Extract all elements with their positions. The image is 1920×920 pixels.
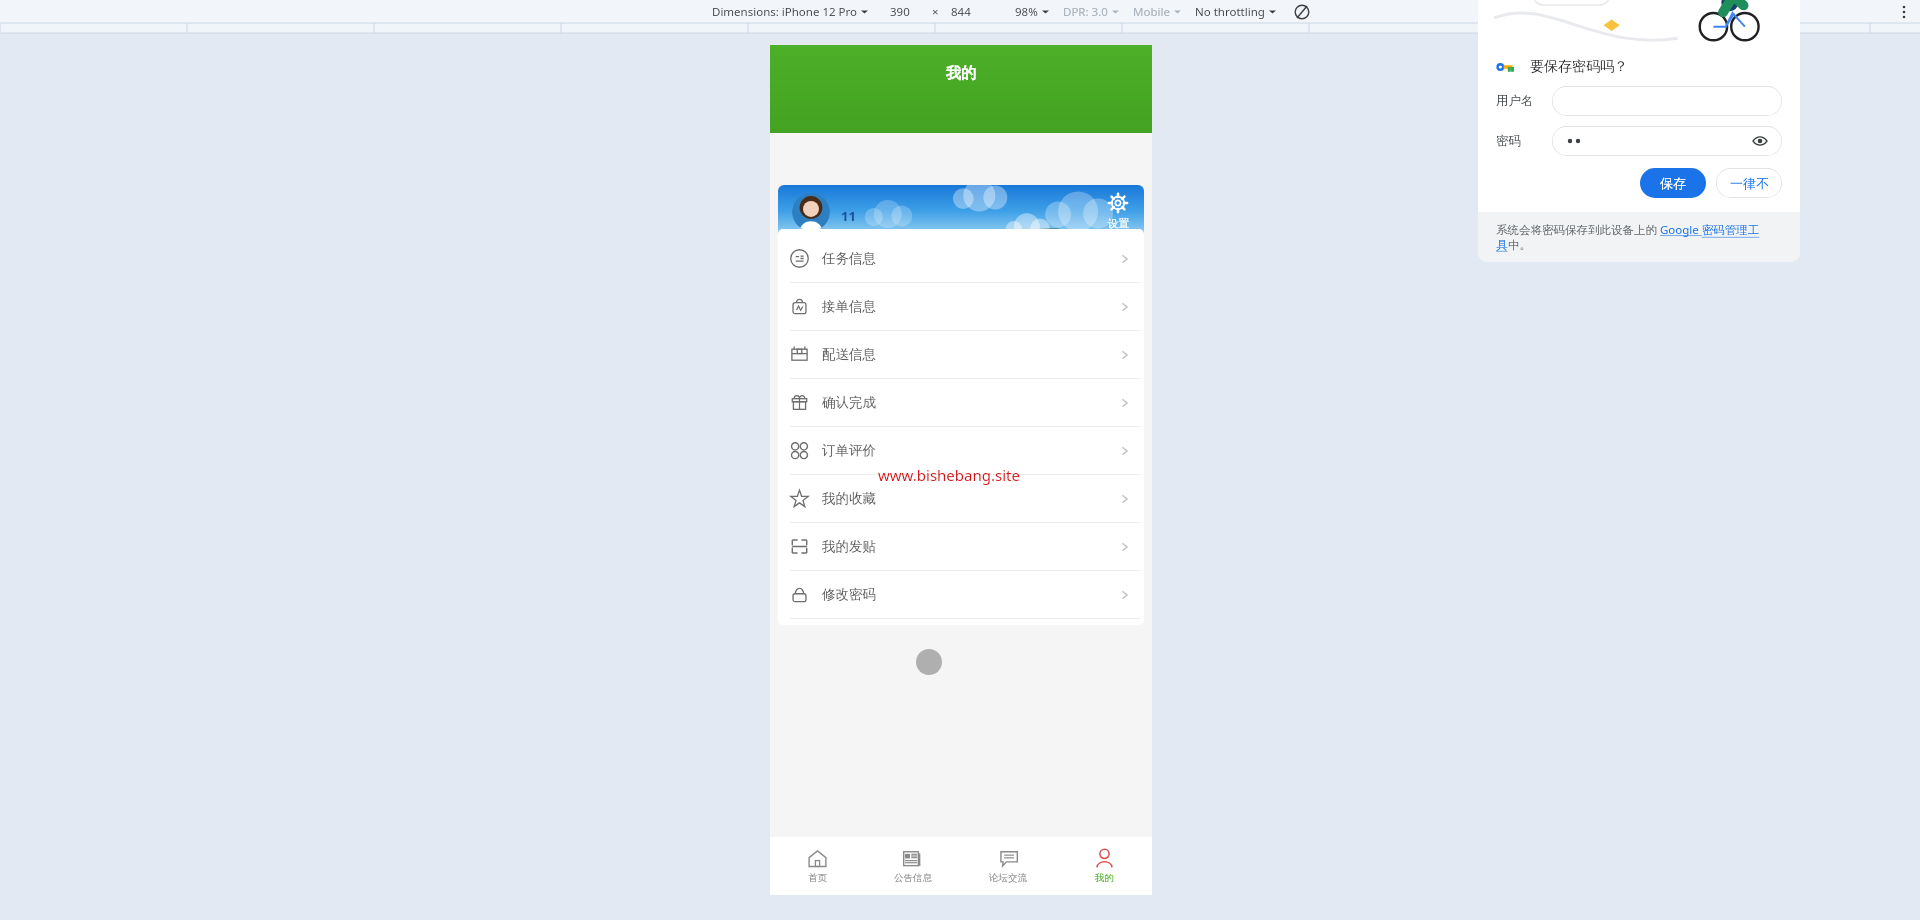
button[interactable]: 订单评价 bbox=[778, 427, 1144, 475]
staticText: 一律不 bbox=[1730, 175, 1769, 191]
staticText: 保存 bbox=[1660, 175, 1686, 191]
staticText: Dimensions: iPhone 12 Pro bbox=[712, 4, 857, 20]
staticText: 844 bbox=[951, 4, 971, 20]
staticText: 公告信息 bbox=[894, 872, 932, 884]
staticText: 98% bbox=[1015, 4, 1038, 20]
staticText: × bbox=[932, 4, 939, 20]
button[interactable] bbox=[1552, 86, 1782, 116]
button[interactable]: Rotate bbox=[1292, 2, 1312, 22]
button[interactable]: 任务信息 bbox=[778, 235, 1144, 283]
button[interactable] bbox=[1552, 126, 1782, 156]
button[interactable]: 一律不 bbox=[1716, 168, 1782, 198]
button[interactable]: 接单信息 bbox=[778, 283, 1144, 331]
staticText: 用户名 bbox=[1496, 93, 1544, 109]
staticText: 配送信息 bbox=[822, 346, 876, 363]
button[interactable]: 保存 bbox=[1640, 168, 1706, 198]
button[interactable]: 公告信息 bbox=[865, 837, 960, 895]
staticText: Mobile bbox=[1133, 4, 1170, 20]
button[interactable]: Avatar bbox=[792, 193, 830, 231]
button[interactable]: 论坛交流 bbox=[960, 837, 1056, 895]
button[interactable]: 设置 bbox=[1106, 191, 1130, 230]
staticText: 我的发贴 bbox=[822, 538, 876, 555]
staticText: 订单评价 bbox=[822, 442, 876, 459]
button[interactable]: More options bbox=[1894, 2, 1914, 22]
staticText: 要保存密码吗？ bbox=[1530, 58, 1628, 76]
staticText: 我的 bbox=[946, 64, 976, 83]
staticText: 密码 bbox=[1496, 133, 1544, 149]
staticText: 论坛交流 bbox=[989, 872, 1027, 884]
staticText: 中。 bbox=[1508, 238, 1531, 252]
staticText: 11 bbox=[841, 207, 856, 225]
staticText: 具 bbox=[1496, 238, 1508, 252]
button[interactable]: 我的 bbox=[1056, 837, 1152, 895]
staticText: 电话： 13823811111 bbox=[792, 240, 902, 256]
button[interactable]: 确认完成 bbox=[778, 379, 1144, 427]
staticText: 设置 bbox=[1108, 217, 1129, 230]
staticText: 我的收藏 bbox=[822, 490, 876, 507]
button[interactable]: 配送信息 bbox=[778, 331, 1144, 379]
staticText: 修改密码 bbox=[822, 586, 876, 603]
staticText: DPR: 3.0 bbox=[1063, 4, 1108, 20]
button[interactable]: Avatar bbox=[778, 185, 1144, 273]
button[interactable]: 我的收藏 bbox=[778, 475, 1144, 523]
button[interactable]: 修改密码 bbox=[778, 571, 1144, 619]
staticText: 系统会将密码保存到此设备上的 bbox=[1496, 222, 1660, 238]
staticText: 首页 bbox=[808, 872, 827, 884]
staticText: 任务信息 bbox=[822, 250, 876, 267]
staticText: No throttling bbox=[1195, 4, 1265, 20]
staticText: 390 bbox=[890, 4, 910, 20]
button[interactable]: 我的发贴 bbox=[778, 523, 1144, 571]
staticText: 接单信息 bbox=[822, 298, 876, 315]
button[interactable]: 首页 bbox=[770, 837, 865, 895]
staticText: www.bishebang.site bbox=[878, 465, 1020, 485]
staticText: 我的 bbox=[1095, 872, 1114, 884]
staticText: 确认完成 bbox=[822, 394, 876, 411]
staticText: Google 密码管理工 bbox=[1660, 222, 1760, 238]
